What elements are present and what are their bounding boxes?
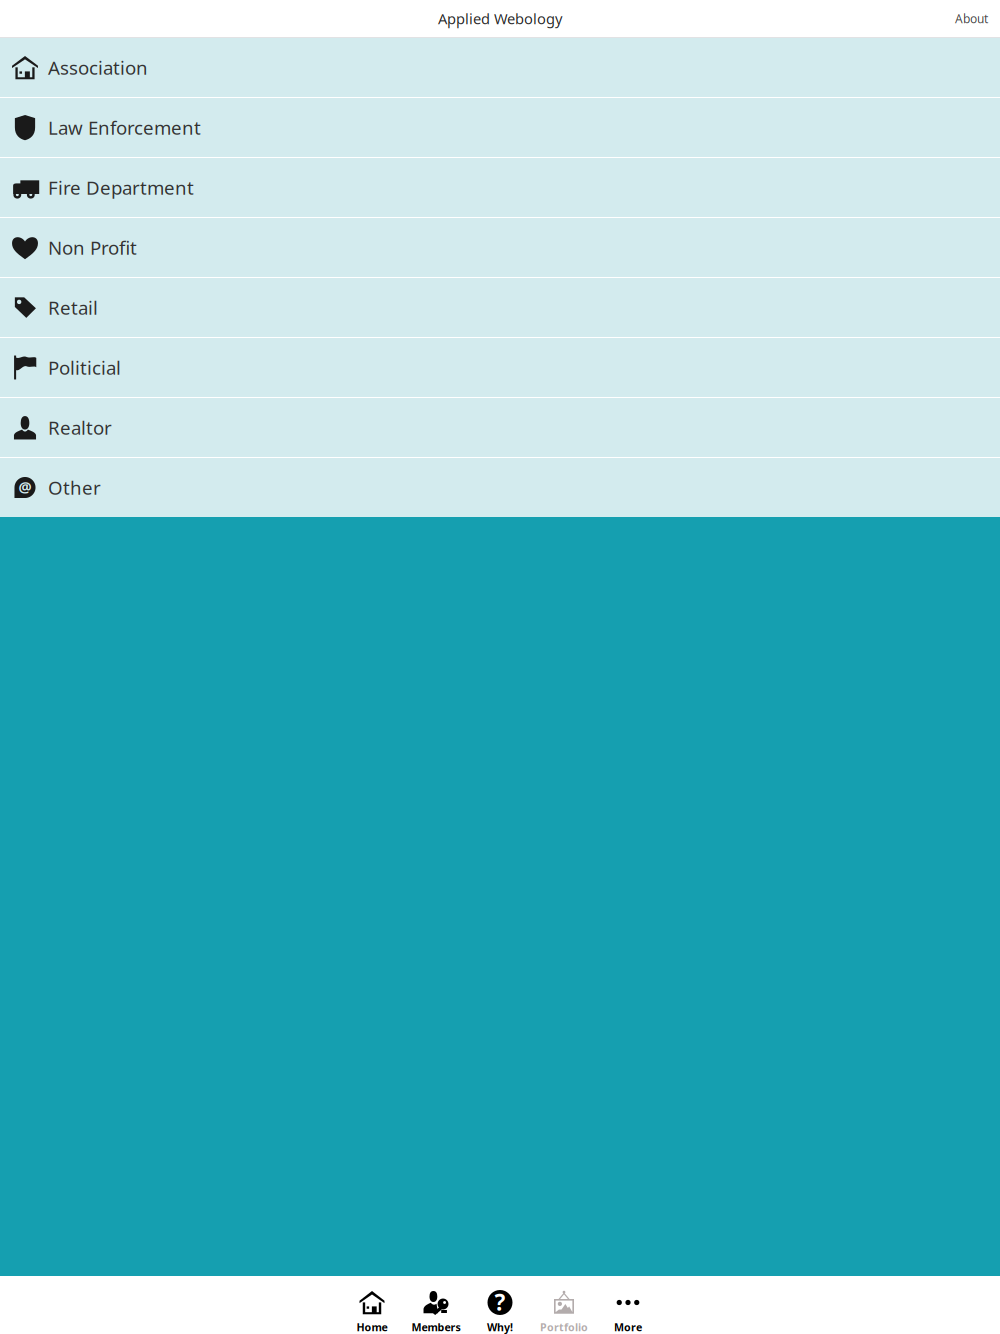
button[interactable]: Law Enforcement <box>0 98 1000 157</box>
button[interactable]: Politicial <box>0 338 1000 397</box>
staticText: Fire Department <box>48 175 194 200</box>
button[interactable]: Realtor <box>0 398 1000 457</box>
button[interactable]: Home <box>340 1276 404 1334</box>
staticText: ? <box>494 1287 505 1317</box>
staticText: @ <box>18 477 31 496</box>
staticText: More <box>614 1320 642 1334</box>
button[interactable]: About <box>955 2 1000 34</box>
button[interactable]: Retail <box>0 278 1000 337</box>
staticText: Association <box>48 55 148 80</box>
button[interactable]: @ <box>0 458 1000 517</box>
staticText: Why! <box>487 1320 513 1334</box>
staticText: About <box>955 10 988 26</box>
button[interactable]: Non Profit <box>0 218 1000 277</box>
button[interactable]: Members <box>404 1276 468 1334</box>
button[interactable]: ? <box>468 1276 532 1334</box>
staticText: Portfolio <box>540 1320 588 1334</box>
button[interactable]: More <box>596 1276 660 1334</box>
staticText: Law Enforcement <box>48 115 201 140</box>
staticText: Realtor <box>48 415 112 440</box>
staticText: Home <box>356 1320 387 1334</box>
staticText: Retail <box>48 295 98 320</box>
button[interactable]: Association <box>0 38 1000 97</box>
button[interactable]: Fire Department <box>0 158 1000 217</box>
button[interactable]: Portfolio <box>532 1276 596 1334</box>
staticText: Non Profit <box>48 235 137 260</box>
staticText: Applied Webology <box>438 9 562 28</box>
staticText: Other <box>48 475 101 500</box>
staticText: Members <box>411 1320 460 1334</box>
staticText: Politicial <box>48 355 121 380</box>
